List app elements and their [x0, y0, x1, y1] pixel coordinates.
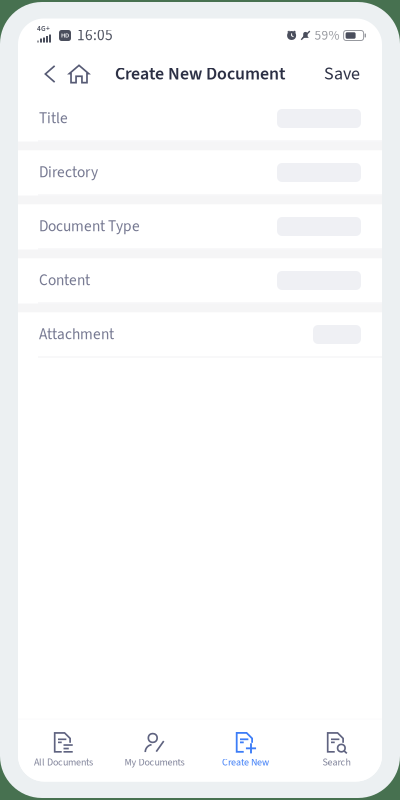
button[interactable]: My Documents — [109, 719, 200, 781]
button[interactable]: Save — [320, 59, 364, 89]
staticText: Content — [39, 270, 90, 291]
staticText: Document Type — [39, 216, 140, 237]
staticText: Directory — [39, 162, 98, 183]
staticText: My Documents — [124, 755, 184, 770]
staticText: 4G+ — [37, 24, 50, 34]
staticText: Create New — [222, 755, 269, 770]
button[interactable]: Content — [18, 258, 382, 303]
staticText: HD — [61, 31, 69, 40]
button[interactable]: Document Type — [18, 204, 382, 249]
button[interactable]: Directory — [18, 150, 382, 195]
staticText: Title — [39, 108, 68, 129]
button[interactable]: Attachment — [18, 312, 382, 357]
staticText: Save — [324, 61, 360, 87]
staticText: All Documents — [34, 755, 93, 770]
staticText: Create New Document — [115, 61, 285, 87]
button[interactable]: All Documents — [18, 719, 109, 781]
button[interactable]: Back — [36, 59, 64, 89]
button[interactable]: Home — [64, 59, 94, 89]
staticText: Search — [322, 755, 350, 770]
button[interactable]: Search — [291, 719, 382, 781]
staticText: Attachment — [39, 324, 114, 345]
button[interactable]: Title — [18, 96, 382, 141]
staticText: 59% — [315, 26, 340, 45]
button[interactable]: Create New — [200, 719, 291, 781]
staticText: 16:05 — [77, 25, 113, 46]
